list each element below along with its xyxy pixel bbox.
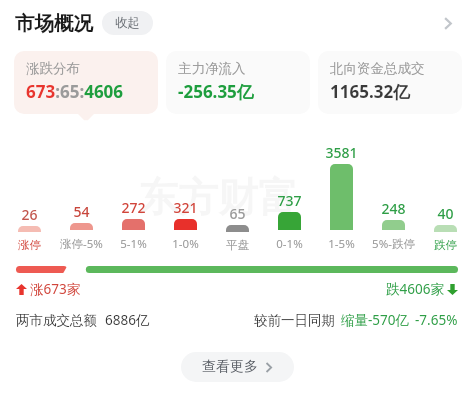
staticText: 市场概况	[15, 11, 93, 36]
button[interactable]: 248	[367, 143, 419, 252]
staticText: 321	[173, 198, 198, 217]
staticText: 5%-跌停	[372, 236, 415, 252]
button[interactable]: 54	[55, 143, 107, 252]
staticText: 跌停	[434, 238, 457, 252]
staticText: 54	[73, 202, 90, 221]
staticText: -7.65%	[415, 311, 458, 329]
staticText: 北向资金总成交	[330, 60, 425, 77]
staticText: 涨跌分布	[26, 60, 80, 77]
staticText: 248	[381, 199, 406, 218]
staticText: 涨停-5%	[60, 236, 103, 252]
button[interactable]: 主力净流入	[166, 51, 310, 114]
staticText: 查看更多	[202, 358, 258, 376]
button[interactable]: 展开更多	[433, 9, 461, 37]
staticText: 65	[229, 204, 246, 223]
button[interactable]: 737	[263, 143, 315, 252]
button[interactable]: 26	[3, 145, 55, 252]
staticText: 272	[121, 198, 146, 217]
staticText: 较前一日同期	[254, 312, 335, 329]
staticText: 1-0%	[172, 236, 199, 252]
staticText: 0-1%	[276, 236, 303, 252]
staticText: -256.35亿	[178, 80, 254, 103]
staticText: 东方财富	[138, 172, 298, 222]
button[interactable]: 272	[107, 143, 159, 252]
staticText: 40	[437, 204, 454, 223]
button[interactable]: 65	[211, 145, 263, 252]
staticText: 缩量	[341, 312, 368, 329]
button[interactable]: 涨跌分布	[14, 51, 158, 114]
button[interactable]: 北向资金总成交	[318, 51, 462, 114]
staticText: 跌4606家	[386, 280, 444, 298]
staticText: 平盘	[226, 238, 249, 252]
staticText: 673:65:4606	[26, 80, 124, 103]
staticText: 5-1%	[120, 236, 147, 252]
staticText: 1165.32亿	[330, 80, 411, 103]
button[interactable]: 收起	[102, 11, 153, 35]
staticText: -570亿	[368, 311, 410, 329]
staticText: 26	[21, 205, 38, 224]
staticText: 6886亿	[105, 311, 150, 329]
staticText: 涨停	[18, 238, 41, 252]
staticText: 1-5%	[328, 236, 355, 252]
staticText: 737	[277, 191, 302, 210]
staticText: 主力净流入	[178, 60, 246, 77]
staticText: 两市成交总额	[16, 312, 97, 329]
staticText: 3581	[325, 143, 358, 162]
staticText: 涨673家	[30, 280, 81, 298]
staticText: 收起	[115, 15, 140, 31]
button[interactable]: 查看更多	[181, 352, 294, 382]
button[interactable]: 321	[159, 143, 211, 252]
button[interactable]: 3581	[315, 143, 367, 252]
button[interactable]: 40	[419, 145, 471, 252]
